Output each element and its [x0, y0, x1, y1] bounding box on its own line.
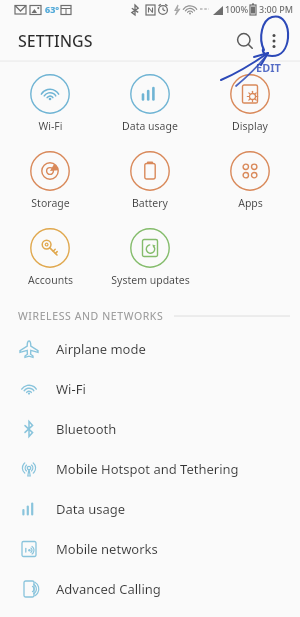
staticText: 100% — [225, 3, 249, 15]
staticText: Bluetooth — [56, 420, 117, 438]
button[interactable]: Data usage — [100, 70, 200, 137]
staticText: WIRELESS AND NETWORKS — [18, 309, 164, 323]
staticText: System updates — [111, 273, 190, 287]
button[interactable]: Airplane mode — [0, 329, 300, 369]
staticText: Mobile Hotspot and Tethering — [56, 460, 239, 478]
staticText: Data usage — [56, 500, 126, 518]
staticText: Data usage — [122, 119, 178, 133]
staticText: Apps — [238, 196, 263, 210]
button[interactable]: Advanced Calling — [0, 569, 300, 609]
staticText: Wi-Fi — [56, 380, 86, 398]
button[interactable]: More options — [257, 24, 291, 58]
button[interactable]: Wi-Fi — [0, 369, 300, 409]
button[interactable]: Accounts — [0, 224, 100, 291]
button[interactable]: Display — [200, 70, 300, 137]
staticText: Accounts — [28, 273, 73, 287]
staticText: Mobile networks — [56, 540, 158, 558]
button[interactable]: Mobile Hotspot and Tethering — [0, 449, 300, 489]
button[interactable]: Search — [228, 24, 262, 58]
button[interactable]: Bluetooth — [0, 409, 300, 449]
button[interactable]: System updates — [100, 224, 200, 291]
button[interactable]: Data usage — [0, 489, 300, 529]
staticText: Battery — [132, 196, 168, 210]
button[interactable]: Storage — [0, 147, 100, 214]
staticText: 3:00 PM — [259, 3, 293, 15]
staticText: SETTINGS — [18, 30, 93, 52]
button[interactable]: Wi-Fi — [0, 70, 100, 137]
staticText: Display — [232, 119, 268, 133]
staticText: Advanced Calling — [56, 580, 161, 598]
button[interactable]: Battery — [100, 147, 200, 214]
staticText: Airplane mode — [56, 340, 146, 358]
button[interactable]: Mobile networks — [0, 529, 300, 569]
staticText: Wi-Fi — [38, 119, 63, 133]
button[interactable]: Apps — [200, 147, 300, 214]
staticText: EDIT — [256, 60, 281, 75]
staticText: Storage — [31, 196, 70, 210]
staticText: 63° — [45, 3, 60, 15]
